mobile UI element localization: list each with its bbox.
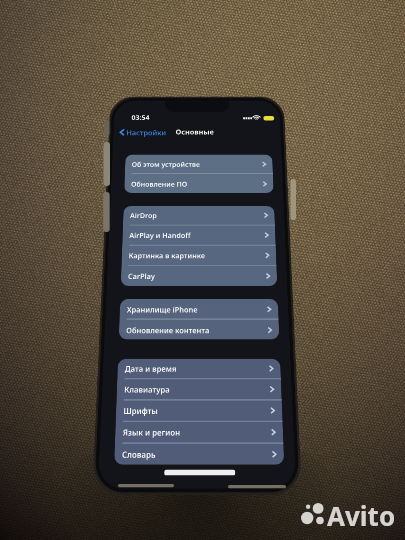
button[interactable]: Настройки	[119, 126, 167, 139]
button[interactable]: Дата и время	[117, 359, 281, 378]
button[interactable]: Клавиатура	[116, 379, 282, 399]
staticText: Клавиатура	[124, 384, 171, 395]
button[interactable]: Картинка в картинке	[121, 246, 276, 265]
staticText: Хранилище iPhone	[127, 304, 198, 314]
staticText: Словарь	[122, 448, 156, 460]
button[interactable]: Обновление контента	[119, 320, 279, 340]
staticText: Картинка в картинке	[128, 250, 206, 260]
button[interactable]: Обновление ПО	[124, 174, 274, 193]
button[interactable]: Шрифты	[116, 400, 283, 421]
button[interactable]: CarPlay	[121, 266, 277, 286]
button[interactable]: AirPlay и Handoff	[122, 226, 276, 245]
staticText: AirPlay и Handoff	[129, 230, 191, 240]
button[interactable]: AirDrop	[123, 206, 275, 225]
staticText: Об этом устройстве	[132, 160, 201, 169]
staticText: Настройки	[126, 127, 166, 137]
button[interactable]: Словарь	[114, 444, 284, 465]
staticText: Дата и время	[125, 363, 177, 374]
staticText: Обновление ПО	[131, 179, 187, 188]
staticText: 03:54	[131, 113, 150, 122]
staticText: Avito	[327, 498, 396, 533]
staticText: AirDrop	[130, 211, 157, 220]
staticText: Язык и регион	[123, 426, 181, 438]
staticText: CarPlay	[128, 271, 155, 281]
staticText: Основные	[176, 127, 215, 137]
button[interactable]: Хранилище iPhone	[119, 299, 279, 319]
staticText: Обновление контента	[126, 325, 210, 335]
button[interactable]: Язык и регион	[115, 422, 283, 443]
staticText: Шрифты	[123, 405, 159, 416]
button[interactable]: Об этом устройстве	[125, 154, 273, 173]
